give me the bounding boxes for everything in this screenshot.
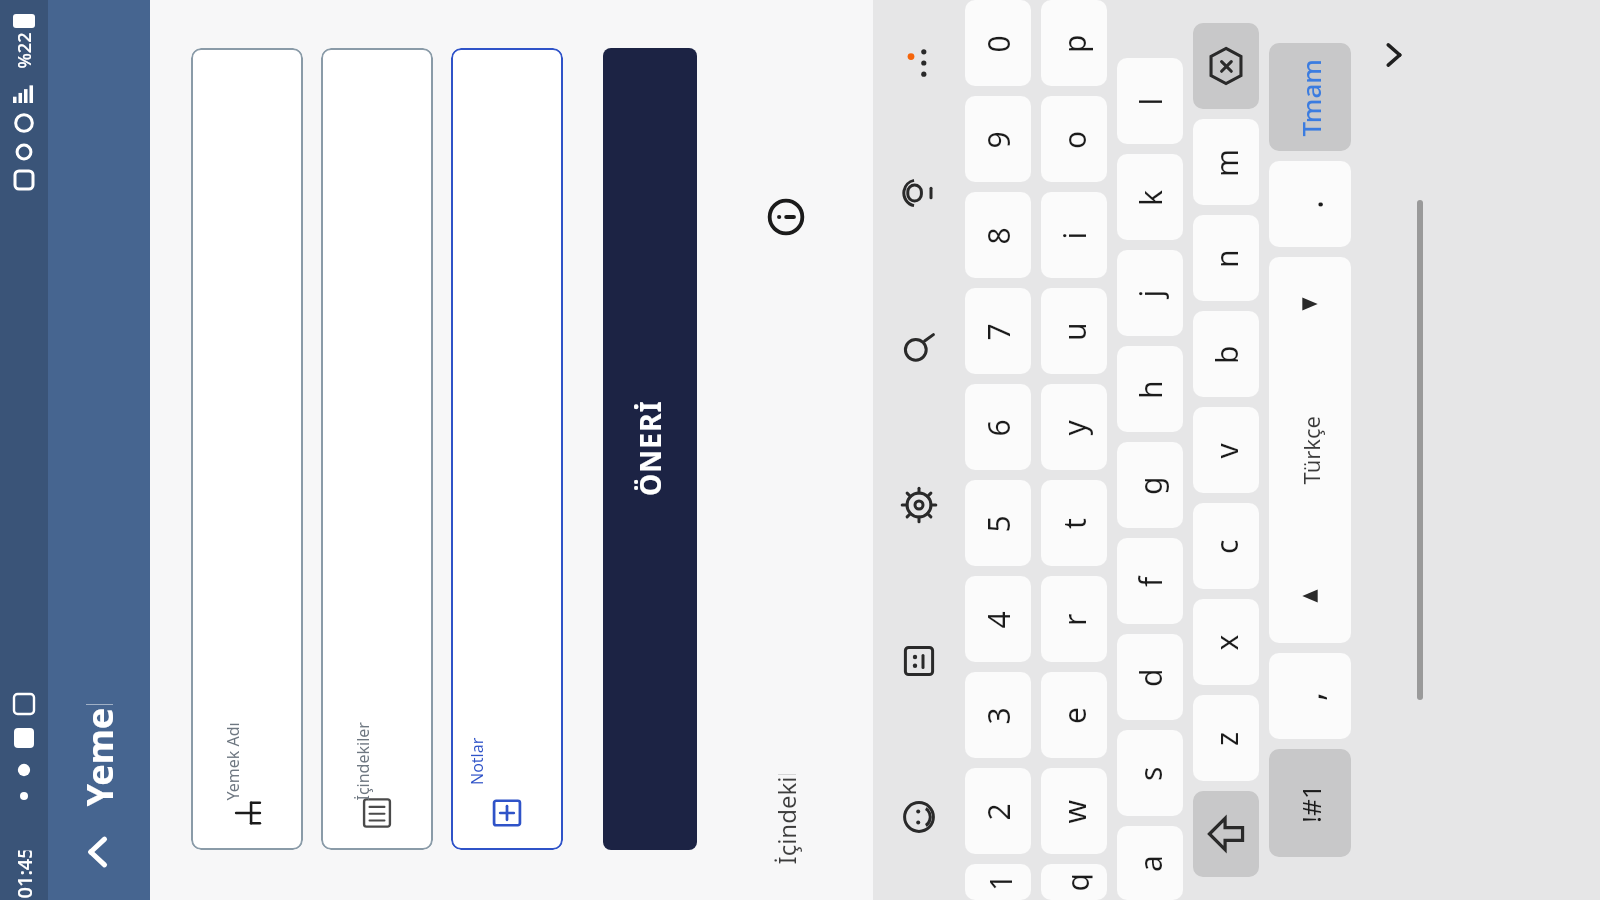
button[interactable]: c	[1193, 503, 1259, 589]
staticText: Türkçe	[1295, 415, 1325, 484]
button[interactable]: 4	[965, 576, 1031, 662]
button[interactable]	[1193, 791, 1259, 877]
staticText: u	[1054, 322, 1095, 341]
button[interactable]: p	[1041, 0, 1107, 86]
button[interactable]: yemek.com/tarif/kabak-sutlusu	[451, 48, 563, 850]
button[interactable]: Ayarlar	[884, 470, 954, 540]
staticText: Yemek Önerisi	[74, 704, 123, 806]
staticText: d	[1130, 668, 1171, 687]
button[interactable]: x	[1193, 599, 1259, 685]
staticText: i	[1053, 231, 1094, 239]
staticText: c	[1206, 539, 1247, 554]
button[interactable]: r	[1041, 576, 1107, 662]
button[interactable]: !#1	[1269, 749, 1351, 857]
staticText: x	[1205, 634, 1246, 650]
staticText: 3	[977, 706, 1018, 724]
button[interactable]: ,	[1269, 653, 1351, 739]
button[interactable]: 7	[965, 288, 1031, 374]
staticText: r	[1054, 613, 1095, 626]
button[interactable]: l	[1117, 58, 1183, 144]
staticText: 8	[977, 226, 1018, 244]
staticText: s	[1130, 766, 1171, 781]
staticText: ,	[1287, 691, 1333, 701]
button[interactable]: h	[1117, 346, 1183, 432]
button[interactable]: m	[1193, 119, 1259, 205]
button[interactable]: i	[1041, 192, 1107, 278]
staticText: b	[1206, 345, 1247, 364]
staticText: İçindekileri ayırırken virgül kullanınız…	[769, 774, 802, 864]
button[interactable]: b	[1193, 311, 1259, 397]
button[interactable]: 3	[965, 672, 1031, 758]
button[interactable]: Bilgi	[767, 198, 805, 236]
button[interactable]: 6	[965, 384, 1031, 470]
staticText: v	[1205, 442, 1246, 458]
button[interactable]: j	[1117, 250, 1183, 336]
staticText: Tmam	[1292, 58, 1327, 136]
staticText: q	[1056, 872, 1092, 891]
staticText: f	[1130, 576, 1171, 587]
button[interactable]: y	[1041, 384, 1107, 470]
staticText: h	[1130, 380, 1171, 399]
button[interactable]: e	[1041, 672, 1107, 758]
button[interactable]: s	[1117, 730, 1183, 816]
button[interactable]: n	[1193, 215, 1259, 301]
button[interactable]: Kabak Sütlüsü	[191, 48, 303, 850]
button[interactable]: Geri	[51, 804, 147, 900]
button[interactable]: Emoji	[884, 782, 954, 852]
button[interactable]: Ara	[884, 314, 954, 384]
button[interactable]: w	[1041, 768, 1107, 854]
button[interactable]: f	[1117, 538, 1183, 624]
staticText: e	[1054, 707, 1095, 724]
button[interactable]: Tmam	[1269, 43, 1351, 151]
staticText: p	[1054, 34, 1095, 53]
staticText: k	[1130, 189, 1171, 206]
staticText: !#1	[1293, 784, 1328, 823]
staticText: Yemek Adı	[221, 721, 243, 800]
staticText: t	[1054, 518, 1095, 529]
button[interactable]: o	[1041, 96, 1107, 182]
button[interactable]: d	[1117, 634, 1183, 720]
staticText: 1	[980, 873, 1016, 891]
staticText: 0	[977, 34, 1018, 52]
staticText: y	[1053, 419, 1094, 435]
staticText: 01:45	[10, 850, 37, 898]
staticText: m	[1206, 148, 1247, 177]
button[interactable]: 1	[965, 864, 1031, 900]
staticText: 2	[977, 802, 1018, 820]
button[interactable]: q	[1041, 864, 1107, 900]
staticText: j	[1129, 289, 1170, 297]
staticText: .	[1287, 199, 1333, 209]
button[interactable]: z	[1193, 695, 1259, 781]
button[interactable]: Sesle yaz	[884, 158, 954, 228]
button[interactable]: v	[1193, 407, 1259, 493]
staticText: 4	[977, 610, 1018, 628]
staticText: ÖNERİ GÖNDER	[631, 402, 669, 496]
staticText: 5	[977, 514, 1018, 532]
staticText: 6	[977, 418, 1018, 436]
staticText: 7	[977, 322, 1018, 340]
staticText: 9	[977, 130, 1018, 148]
button[interactable]	[1193, 23, 1259, 109]
button[interactable]: k	[1117, 154, 1183, 240]
button[interactable]: Bal, Süt, Toz Şeker, Nişasta, Pirinç Unu…	[321, 48, 433, 850]
button[interactable]: 9	[965, 96, 1031, 182]
button[interactable]: 2	[965, 768, 1031, 854]
button[interactable]: Geri	[1369, 30, 1419, 80]
staticText: g	[1130, 476, 1171, 495]
button[interactable]: 8	[965, 192, 1031, 278]
button[interactable]: .	[1269, 161, 1351, 247]
button[interactable]: Diğer	[884, 28, 954, 98]
button[interactable]: Türkçe	[1269, 257, 1351, 643]
staticText: o	[1054, 130, 1095, 149]
button[interactable]: 0	[965, 0, 1031, 86]
button[interactable]: Çıkartma	[884, 626, 954, 696]
staticText: z	[1206, 731, 1247, 746]
button[interactable]: u	[1041, 288, 1107, 374]
button[interactable]: ÖNERİ GÖNDER	[603, 48, 697, 850]
button[interactable]: 5	[965, 480, 1031, 566]
button[interactable]: t	[1041, 480, 1107, 566]
button[interactable]: a	[1117, 826, 1183, 900]
staticText: w	[1053, 799, 1094, 823]
button[interactable]: g	[1117, 442, 1183, 528]
staticText: a	[1130, 855, 1171, 872]
